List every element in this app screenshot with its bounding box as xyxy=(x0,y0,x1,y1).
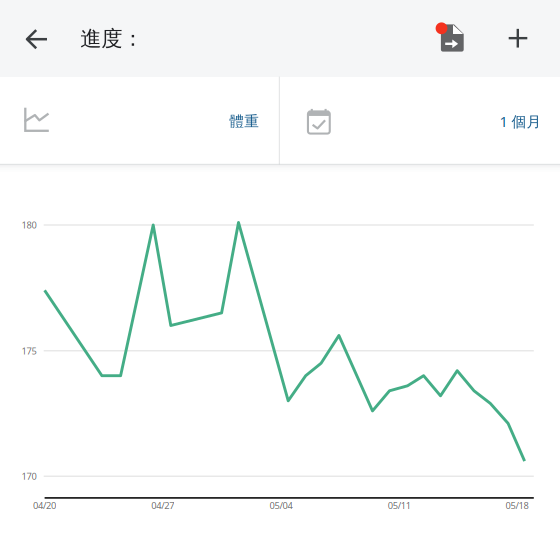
button[interactable]: Add xyxy=(505,25,531,51)
button[interactable]: 體重 xyxy=(0,77,279,165)
staticText: 進度： xyxy=(80,26,143,52)
staticText: 05/11 xyxy=(388,499,411,512)
button[interactable]: Export xyxy=(431,17,469,57)
button[interactable]: Back xyxy=(22,25,52,53)
staticText: 04/20 xyxy=(33,499,56,512)
staticText: 體重 xyxy=(229,112,259,130)
staticText: 180 xyxy=(21,219,36,231)
staticText: 170 xyxy=(21,470,36,482)
staticText: 05/18 xyxy=(505,499,528,512)
staticText: 1 個月 xyxy=(500,112,542,131)
staticText: 04/27 xyxy=(151,499,174,512)
staticText: 05/04 xyxy=(269,499,292,512)
button[interactable]: 1 個月 xyxy=(279,77,560,165)
staticText: 175 xyxy=(21,345,36,357)
